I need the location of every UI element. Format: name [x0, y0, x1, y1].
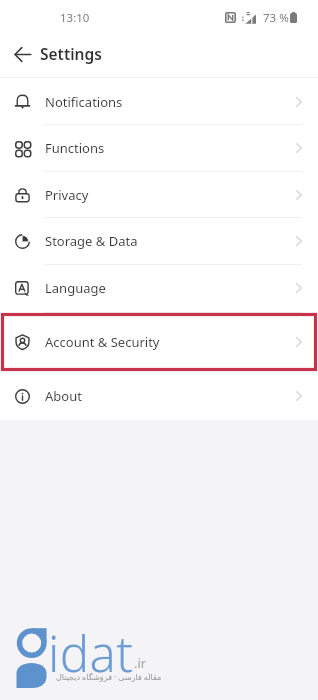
button[interactable]: Language: [0, 264, 318, 311]
staticText: Functions: [45, 139, 105, 157]
staticText: About: [45, 387, 82, 405]
staticText: Privacy: [45, 186, 89, 204]
staticText: idat: [48, 620, 134, 687]
staticText: مقاله فارسی · فروشگاه دیجیتال: [56, 671, 162, 682]
staticText: Account & Security: [45, 333, 160, 351]
button[interactable]: Functions: [0, 124, 318, 171]
staticText: 73 %: [263, 10, 289, 26]
staticText: Settings: [40, 43, 102, 64]
button[interactable]: Back: [11, 43, 33, 65]
staticText: .ir: [134, 654, 147, 672]
button[interactable]: About: [0, 372, 318, 419]
button[interactable]: Account & Security: [0, 318, 318, 365]
staticText: Storage & Data: [45, 232, 138, 250]
staticText: Language: [45, 279, 106, 297]
button[interactable]: Notifications: [0, 78, 318, 125]
button[interactable]: Storage & Data: [0, 217, 318, 264]
staticText: Notifications: [45, 93, 123, 111]
staticText: 13:10: [60, 10, 90, 26]
button[interactable]: Privacy: [0, 171, 318, 218]
